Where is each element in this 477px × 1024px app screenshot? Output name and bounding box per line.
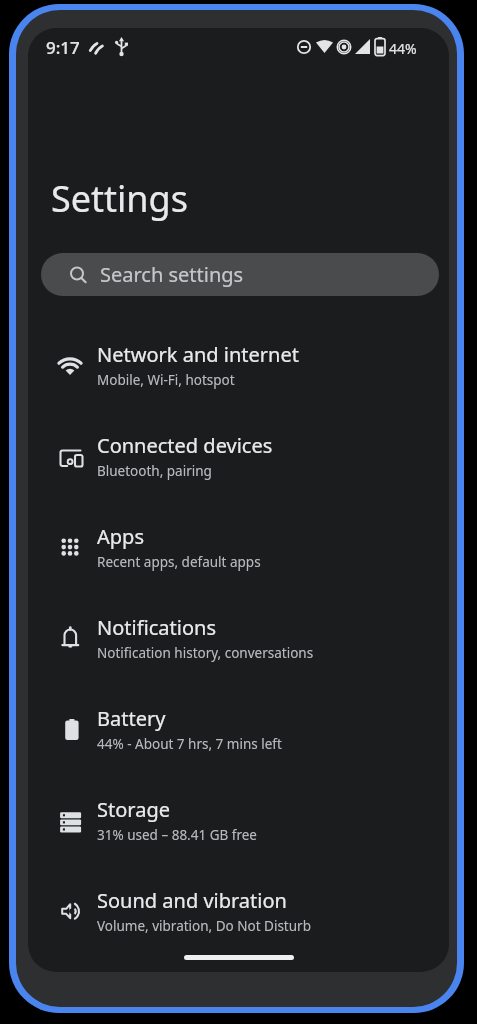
staticText: Bluetooth, pairing: [97, 462, 212, 480]
staticText: Battery: [97, 705, 166, 732]
button[interactable]: Search settings: [41, 253, 439, 296]
staticText: Sound and vibration: [97, 887, 287, 914]
staticText: Notification history, conversations: [97, 644, 314, 662]
staticText: Notifications: [97, 614, 216, 641]
button[interactable]: Notifications: [28, 592, 449, 683]
button[interactable]: Connected devices: [28, 410, 449, 501]
staticText: 31% used – 88.41 GB free: [97, 826, 257, 844]
staticText: 44%: [389, 39, 417, 58]
button[interactable]: Battery: [28, 683, 449, 774]
staticText: Storage: [97, 796, 170, 823]
staticText: Search settings: [100, 261, 244, 288]
staticText: Apps: [97, 523, 144, 550]
staticText: 44% - About 7 hrs, 7 mins left: [97, 735, 282, 753]
button[interactable]: Sound and vibration: [28, 865, 449, 956]
staticText: 9:17: [46, 36, 80, 59]
button[interactable]: Storage: [28, 774, 449, 865]
staticText: Connected devices: [97, 432, 273, 459]
staticText: Mobile, Wi-Fi, hotspot: [97, 371, 235, 389]
staticText: Volume, vibration, Do Not Disturb: [97, 917, 311, 935]
staticText: Settings: [51, 174, 188, 223]
staticText: Network and internet: [97, 341, 299, 368]
button[interactable]: Apps: [28, 501, 449, 592]
button[interactable]: Network and internet: [28, 319, 449, 410]
staticText: Recent apps, default apps: [97, 553, 261, 571]
